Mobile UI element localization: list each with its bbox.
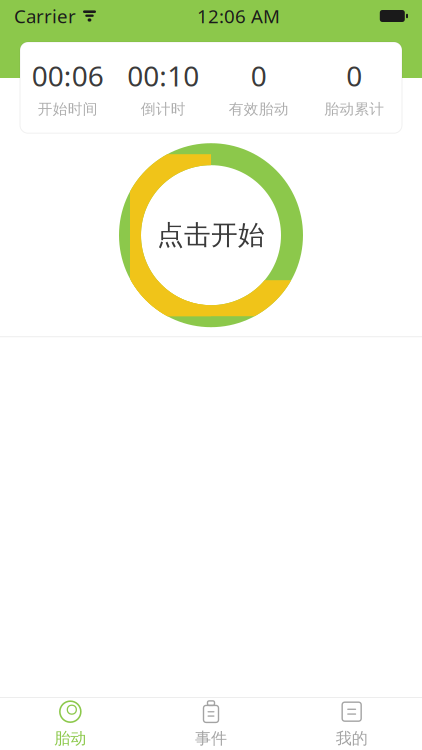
button[interactable]: 点击开始 [130,154,292,316]
button[interactable]: 我的 [281,693,422,750]
staticText: 12:06 AM [197,4,280,28]
staticText: Carrier [14,4,76,28]
staticText: 00:06 [32,57,104,94]
staticText: 胎动累计 [324,100,384,118]
staticText: 0 [346,57,362,94]
staticText: 00:10 [127,57,199,94]
button[interactable]: 胎动 [0,693,141,750]
button[interactable]: 事件 [141,693,281,750]
staticText: 开始时间 [38,100,98,118]
staticText: 胎动 [54,729,86,748]
staticText: 0 [251,57,267,94]
staticText: 点击开始 [157,219,265,252]
staticText: 我的 [336,729,368,748]
staticText: 倒计时 [141,100,186,118]
staticText: 有效胎动 [229,100,289,118]
staticText: 事件 [195,729,227,748]
